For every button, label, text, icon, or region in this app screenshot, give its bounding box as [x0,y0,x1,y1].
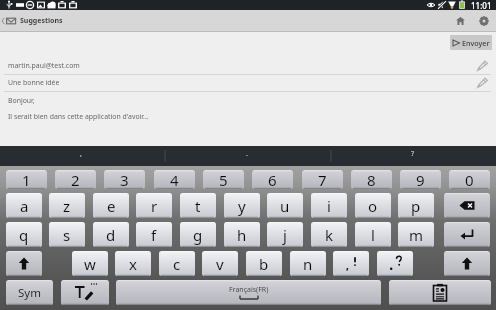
staticText: ? [411,149,415,159]
button[interactable]: Space [116,280,381,305]
button[interactable]: 3 [104,170,145,189]
button[interactable]: 1 [6,170,47,189]
staticText: 1 [22,170,31,189]
button[interactable]: t [180,193,216,218]
button[interactable]: 9 [400,170,441,189]
button[interactable]: Sym [6,280,53,305]
staticText: o [368,196,378,216]
staticText: Envoyer [462,38,490,48]
button[interactable]: Settings [473,10,495,32]
button[interactable]: Comma [333,251,369,276]
staticText: Suggestions [20,16,63,26]
button[interactable]: 6 [252,170,293,189]
staticText: 9 [416,170,425,189]
staticText: n [303,254,313,274]
button[interactable]: Envoyer [450,35,492,50]
button[interactable]: Backspace [444,193,490,218]
button[interactable]: Home [449,10,471,32]
button[interactable]: y [224,193,260,218]
staticText: 2 [71,170,80,189]
staticText: 3 [120,170,129,189]
button[interactable]: 7 [302,170,343,189]
button[interactable]: r [136,193,172,218]
button[interactable]: 8 [351,170,392,189]
button[interactable]: martin.paul@test.com [0,56,496,74]
staticText: w [84,254,96,274]
button[interactable]: Enter [444,222,490,247]
staticText: Français(FR) [229,285,269,295]
staticText: s [63,225,71,245]
button[interactable]: p [398,193,434,218]
staticText: 7 [318,170,327,189]
staticText: e [107,196,116,216]
staticText: v [216,254,224,274]
button[interactable]: a [6,193,42,218]
staticText: x [129,254,137,274]
staticText: Il serait bien dans cette application d'… [8,112,149,121]
button[interactable]: b [246,251,282,276]
staticText: p [411,196,421,216]
staticText: 4 [170,170,179,189]
button[interactable]: Handwriting [61,280,109,305]
button[interactable]: 5 [203,170,244,189]
button[interactable]: u [267,193,303,218]
staticText: a [20,196,29,216]
staticText: Sym [18,285,41,301]
staticText: i [327,196,331,216]
staticText: . [246,149,248,159]
button[interactable]: Une bonne idée [0,74,496,91]
button[interactable]: m [398,222,434,247]
button[interactable]: l [355,222,391,247]
staticText: 0 [465,170,474,189]
button[interactable]: z [49,193,85,218]
staticText: y [238,196,246,216]
staticText: 6 [268,170,277,189]
button[interactable]: j [267,222,303,247]
staticText: k [325,225,334,245]
button[interactable]: d [93,222,129,247]
staticText: d [106,225,116,245]
staticText: u [280,196,290,216]
button[interactable]: k [311,222,347,247]
button[interactable]: w [72,251,108,276]
staticText: martin.paul@test.com [8,61,80,70]
staticText: h [237,225,247,245]
staticText: Une bonne idée [8,78,60,87]
button[interactable]: Clipboard [389,280,491,305]
staticText: j [283,225,287,245]
button[interactable]: q [6,222,42,247]
staticText: l [371,225,375,245]
button[interactable]: h [224,222,260,247]
button[interactable]: 2 [55,170,96,189]
staticText: b [259,254,269,274]
staticText: t [195,196,201,216]
staticText: Bonjour, [8,96,35,105]
button[interactable]: 4 [154,170,195,189]
staticText: g [193,225,203,245]
staticText: q [19,225,29,245]
button[interactable]: i [311,193,347,218]
staticText: , [80,149,82,159]
staticText: z [63,196,71,216]
button[interactable]: 0 [449,170,490,189]
button[interactable]: f [136,222,172,247]
button[interactable]: g [180,222,216,247]
button[interactable]: c [159,251,195,276]
button[interactable]: o [355,193,391,218]
button[interactable]: n [290,251,326,276]
staticText: 8 [367,170,376,189]
staticText: f [151,225,157,245]
button[interactable]: s [49,222,85,247]
button[interactable]: e [93,193,129,218]
button[interactable]: Shift [6,251,42,276]
button[interactable]: x [115,251,151,276]
button[interactable]: v [202,251,238,276]
button[interactable]: Shift [444,251,490,276]
staticText: 5 [219,170,228,189]
button[interactable]: Suggestions [0,10,70,32]
staticText: m [409,225,424,245]
staticText: c [173,254,181,274]
staticText: 11:01 [471,0,492,10]
staticText: r [151,196,158,216]
button[interactable]: Period [377,251,413,276]
